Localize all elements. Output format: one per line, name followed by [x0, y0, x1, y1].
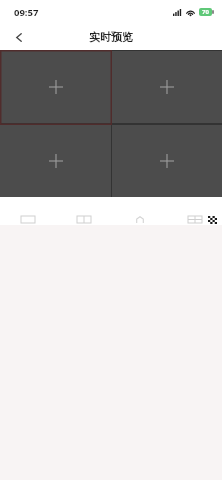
button[interactable]: Split view	[56, 197, 112, 225]
button[interactable]: Back	[7, 26, 30, 49]
button[interactable]: Single view	[0, 197, 56, 225]
button[interactable]: Grid view	[168, 197, 222, 225]
button[interactable]: Add camera	[0, 51, 111, 123]
button[interactable]: Add camera	[0, 125, 111, 197]
button[interactable]: More options	[207, 215, 217, 225]
staticText: 实时预览	[89, 30, 133, 44]
staticText: 09:57	[14, 6, 39, 19]
staticText: 70	[202, 8, 209, 16]
button[interactable]: Add camera	[112, 125, 222, 197]
button[interactable]: Add camera	[112, 51, 222, 123]
button[interactable]: Home	[112, 197, 168, 225]
